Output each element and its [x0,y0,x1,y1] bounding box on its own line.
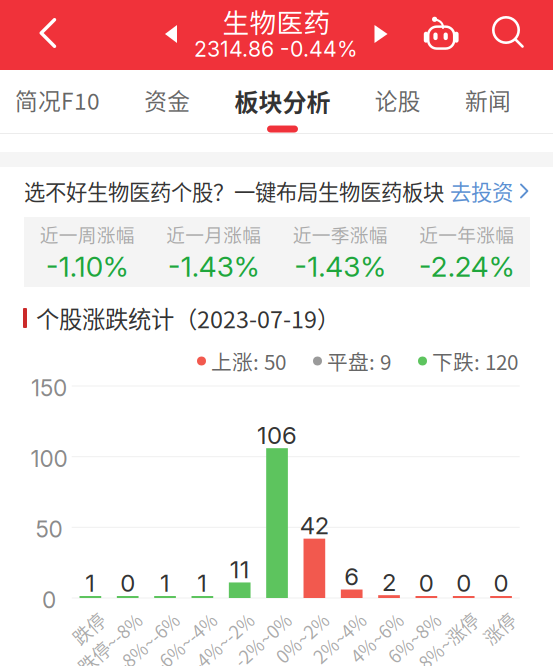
staticText: 生物医药 [222,2,330,40]
staticText: 资金 [144,83,190,116]
button[interactable]: 板块分析 [234,68,330,134]
staticText: 6 [344,562,359,591]
staticText: 150 [31,374,67,402]
staticText: -1.43% [168,250,260,283]
staticText: 0 [42,586,56,614]
staticText: 跌停~-8% [54,606,133,632]
staticText: 106 [257,421,297,450]
staticText: 0 [419,568,434,597]
staticText: 1 [85,568,95,597]
staticText: 42 [300,511,329,540]
button[interactable]: 资金 [144,68,190,134]
staticText: 近一年涨幅 [419,220,514,247]
staticText: 0 [493,568,508,597]
staticText: 平盘: 9 [327,346,391,376]
staticText: -8%~-6% [94,606,170,632]
button[interactable]: Search [486,10,532,56]
staticText: -2%~0% [212,606,282,632]
staticText: 简况F10 [15,83,100,116]
button[interactable]: 论股 [375,68,421,134]
staticText: 0 [120,568,135,597]
staticText: 近一月涨幅 [166,220,261,247]
staticText: 2%~4% [293,606,357,632]
staticText: 上涨: 50 [211,346,286,376]
staticText: 0 [456,568,471,597]
staticText: 选不好生物医药个股？一键布局生物医药板块 [24,176,444,206]
staticText: 个股涨跌统计（2023-07-19） [36,301,340,335]
button[interactable]: AI assistant [417,9,465,57]
staticText: 2 [382,568,396,597]
button[interactable]: Next sector [361,12,401,56]
staticText: 去投资 [450,176,513,206]
staticText: 1 [197,568,207,597]
staticText: -2.24% [419,250,515,283]
staticText: 涨停 [470,606,506,632]
staticText: 近一季涨幅 [293,220,388,247]
staticText: -4%~-2% [169,606,245,632]
staticText: 跌停 [59,606,95,632]
staticText: 1 [160,568,170,597]
staticText: 论股 [375,83,421,116]
staticText: 板块分析 [234,83,330,118]
button[interactable]: 简况F10 [15,68,100,134]
staticText: 2314.86 -0.44% [194,36,358,62]
staticText: 50 [35,516,62,543]
staticText: 0%~2% [255,606,319,632]
button[interactable]: Previous sector [151,12,191,56]
staticText: 新闻 [465,83,511,116]
button[interactable]: 新闻 [465,68,511,134]
staticText: -1.10% [46,250,129,283]
staticText: 11 [230,555,250,584]
button[interactable]: 去投资 [441,171,529,211]
staticText: 近一周涨幅 [40,220,135,247]
staticText: 4%~6% [330,606,394,632]
button[interactable]: Back [23,0,73,68]
staticText: -1.43% [294,250,386,283]
staticText: 100 [30,445,67,472]
staticText: 8%~涨停 [396,606,469,632]
staticText: 下跌: 120 [432,346,518,376]
button[interactable]: 选不好生物医药个股？一键布局生物医药板块 [24,171,444,211]
staticText: 6%~8% [367,606,431,632]
staticText: -6%~-4% [131,606,207,632]
